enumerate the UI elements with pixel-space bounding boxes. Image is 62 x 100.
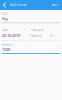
button[interactable]: SAVE (48, 0, 62, 10)
button[interactable]: Back (0, 0, 9, 10)
staticText: Title (2, 12, 8, 15)
staticText: 1500 (2, 47, 10, 52)
staticText: Pay (2, 16, 8, 21)
staticText: Add Income (10, 3, 27, 7)
staticText: Date (2, 28, 8, 32)
staticText: Select (31, 33, 41, 38)
staticText: SAVE (51, 3, 57, 7)
staticText: Amount (2, 43, 13, 46)
staticText: 20-10-2019 (2, 33, 20, 38)
staticText: Category (31, 28, 43, 32)
